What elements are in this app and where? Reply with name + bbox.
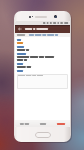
button[interactable]: Cancelar	[52, 120, 70, 127]
button[interactable]: Editar	[34, 120, 52, 127]
button[interactable]	[17, 34, 68, 36]
button[interactable]: Imprimir	[15, 120, 34, 127]
button[interactable]: Home	[35, 132, 51, 138]
button[interactable]	[18, 75, 67, 88]
button[interactable]: Voltar	[17, 26, 23, 32]
